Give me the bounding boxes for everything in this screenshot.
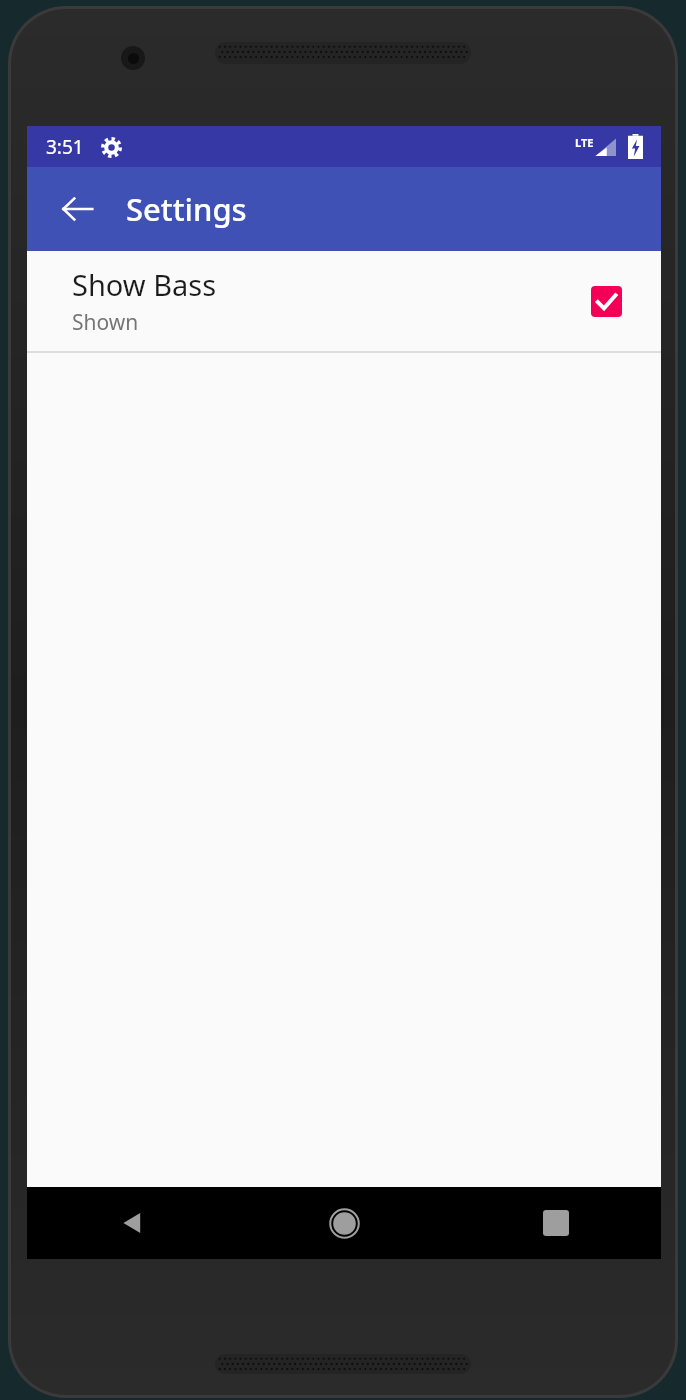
button[interactable]: Show Bass checkbox, checked [589,284,623,318]
staticText: Settings [126,188,247,230]
button[interactable]: Recent apps [450,1187,661,1259]
button[interactable]: Home [239,1187,450,1259]
button[interactable]: Back [27,1187,239,1259]
staticText: 3:51 [46,134,84,160]
staticText: LTE [575,135,594,150]
button[interactable]: Back [55,187,99,231]
staticText: Shown [72,308,139,337]
button[interactable]: Show Bass [27,251,661,351]
staticText: Show Bass [72,265,217,304]
